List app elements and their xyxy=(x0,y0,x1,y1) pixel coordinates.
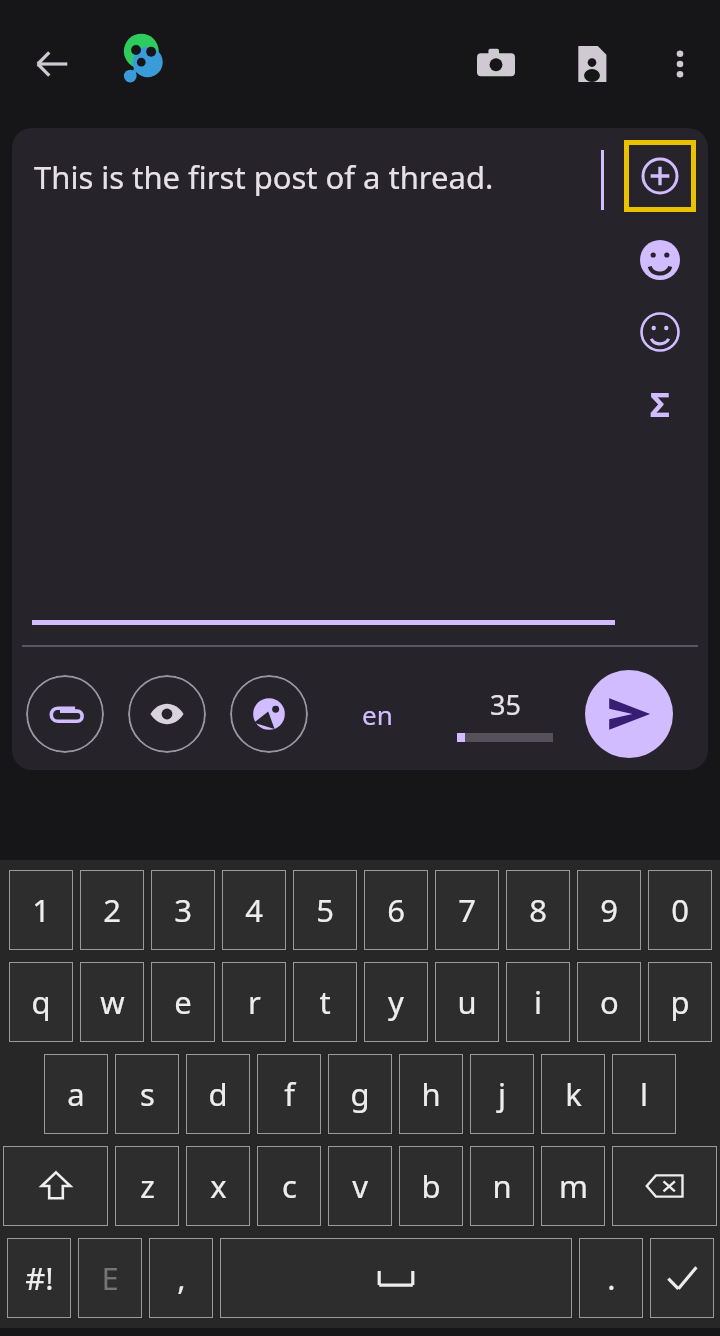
button[interactable]: n xyxy=(470,1146,534,1226)
staticText: m xyxy=(559,1165,588,1207)
button[interactable]: e xyxy=(151,962,215,1042)
staticText: 9 xyxy=(600,889,618,931)
staticText: en xyxy=(362,697,393,732)
staticText: E xyxy=(101,1257,119,1299)
staticText: d xyxy=(208,1073,228,1115)
button[interactable]: Camera xyxy=(470,38,522,90)
button[interactable]: a xyxy=(44,1054,108,1134)
button[interactable]: . xyxy=(579,1238,643,1318)
button[interactable]: Contacts xyxy=(566,38,618,90)
button[interactable]: Content warning xyxy=(128,675,206,753)
staticText: 6 xyxy=(387,889,405,931)
staticText: k xyxy=(565,1073,582,1115)
staticText: , xyxy=(177,1257,186,1299)
button[interactable]: Delete xyxy=(612,1146,717,1226)
button[interactable]: Visibility xyxy=(230,675,308,753)
button[interactable]: x xyxy=(186,1146,250,1226)
button[interactable]: w xyxy=(80,962,144,1042)
staticText: v xyxy=(352,1165,368,1207)
button[interactable]: d xyxy=(186,1054,250,1134)
button[interactable]: m xyxy=(541,1146,605,1226)
staticText: p xyxy=(670,981,690,1023)
staticText: x xyxy=(210,1165,227,1207)
button[interactable]: Back xyxy=(26,38,78,90)
button[interactable]: 3 xyxy=(151,870,215,950)
button[interactable]: r xyxy=(222,962,286,1042)
button[interactable]: Send xyxy=(585,670,673,758)
staticText: s xyxy=(140,1073,155,1115)
button[interactable]: j xyxy=(470,1054,534,1134)
button[interactable]: h xyxy=(399,1054,463,1134)
button[interactable]: l xyxy=(612,1054,676,1134)
button[interactable]: Shift xyxy=(3,1146,108,1226)
button[interactable]: y xyxy=(364,962,428,1042)
staticText: w xyxy=(100,981,125,1023)
button[interactable]: o xyxy=(577,962,641,1042)
button[interactable]: 6 xyxy=(364,870,428,950)
button[interactable]: t xyxy=(293,962,357,1042)
staticText: l xyxy=(640,1073,648,1115)
button[interactable]: c xyxy=(257,1146,321,1226)
staticText: This is the first post of a thread. xyxy=(34,156,614,198)
button[interactable]: z xyxy=(115,1146,179,1226)
staticText: 2 xyxy=(103,889,121,931)
staticText: b xyxy=(421,1165,441,1207)
button[interactable]: 2 xyxy=(80,870,144,950)
button[interactable]: 4 xyxy=(222,870,286,950)
staticText: t xyxy=(319,981,331,1023)
staticText: 4 xyxy=(245,889,263,931)
button[interactable]: 1 xyxy=(9,870,73,950)
button[interactable]: #! xyxy=(7,1238,71,1318)
button[interactable]: q xyxy=(9,962,73,1042)
button[interactable]: Emoji xyxy=(636,236,684,284)
button[interactable]: u xyxy=(435,962,499,1042)
staticText: 8 xyxy=(529,889,547,931)
staticText: c xyxy=(282,1165,297,1207)
button[interactable]: f xyxy=(257,1054,321,1134)
staticText: z xyxy=(140,1165,155,1207)
staticText: u xyxy=(457,981,477,1023)
staticText: j xyxy=(498,1073,506,1115)
staticText: 1 xyxy=(32,889,50,931)
staticText: y xyxy=(388,981,404,1023)
button[interactable]: Custom emoji xyxy=(636,308,684,356)
button[interactable]: More options xyxy=(654,38,706,90)
staticText: a xyxy=(67,1073,85,1115)
button[interactable]: b xyxy=(399,1146,463,1226)
button[interactable]: i xyxy=(506,962,570,1042)
staticText: 0 xyxy=(671,889,689,931)
staticText: e xyxy=(174,981,192,1023)
button[interactable]: v xyxy=(328,1146,392,1226)
button[interactable]: Attach media xyxy=(26,675,104,753)
button[interactable]: s xyxy=(115,1054,179,1134)
button[interactable]: Account xyxy=(114,32,172,90)
button[interactable]: g xyxy=(328,1054,392,1134)
staticText: #! xyxy=(25,1257,54,1299)
staticText: n xyxy=(492,1165,512,1207)
button[interactable]: Enter xyxy=(650,1238,714,1318)
button[interactable]: k xyxy=(541,1054,605,1134)
staticText: 5 xyxy=(316,889,334,931)
button[interactable]: 5 xyxy=(293,870,357,950)
button[interactable]: 9 xyxy=(577,870,641,950)
button[interactable]: , xyxy=(149,1238,213,1318)
button[interactable]: 7 xyxy=(435,870,499,950)
button[interactable]: en xyxy=(354,689,401,740)
staticText: f xyxy=(284,1073,295,1115)
button[interactable]: Add poll xyxy=(624,140,696,212)
staticText: 3 xyxy=(174,889,192,931)
staticText: i xyxy=(534,981,542,1023)
button[interactable]: Space xyxy=(220,1238,572,1318)
button[interactable]: 0 xyxy=(648,870,712,950)
staticText: Σ xyxy=(650,381,670,427)
button[interactable]: 8 xyxy=(506,870,570,950)
staticText: 7 xyxy=(458,889,476,931)
button[interactable]: E xyxy=(78,1238,142,1318)
button[interactable]: p xyxy=(648,962,712,1042)
button[interactable]: Σ xyxy=(636,380,684,428)
staticText: r xyxy=(248,981,261,1023)
staticText: o xyxy=(600,981,619,1023)
staticText: h xyxy=(421,1073,441,1115)
staticText: q xyxy=(31,981,51,1023)
staticText: . xyxy=(607,1257,616,1299)
